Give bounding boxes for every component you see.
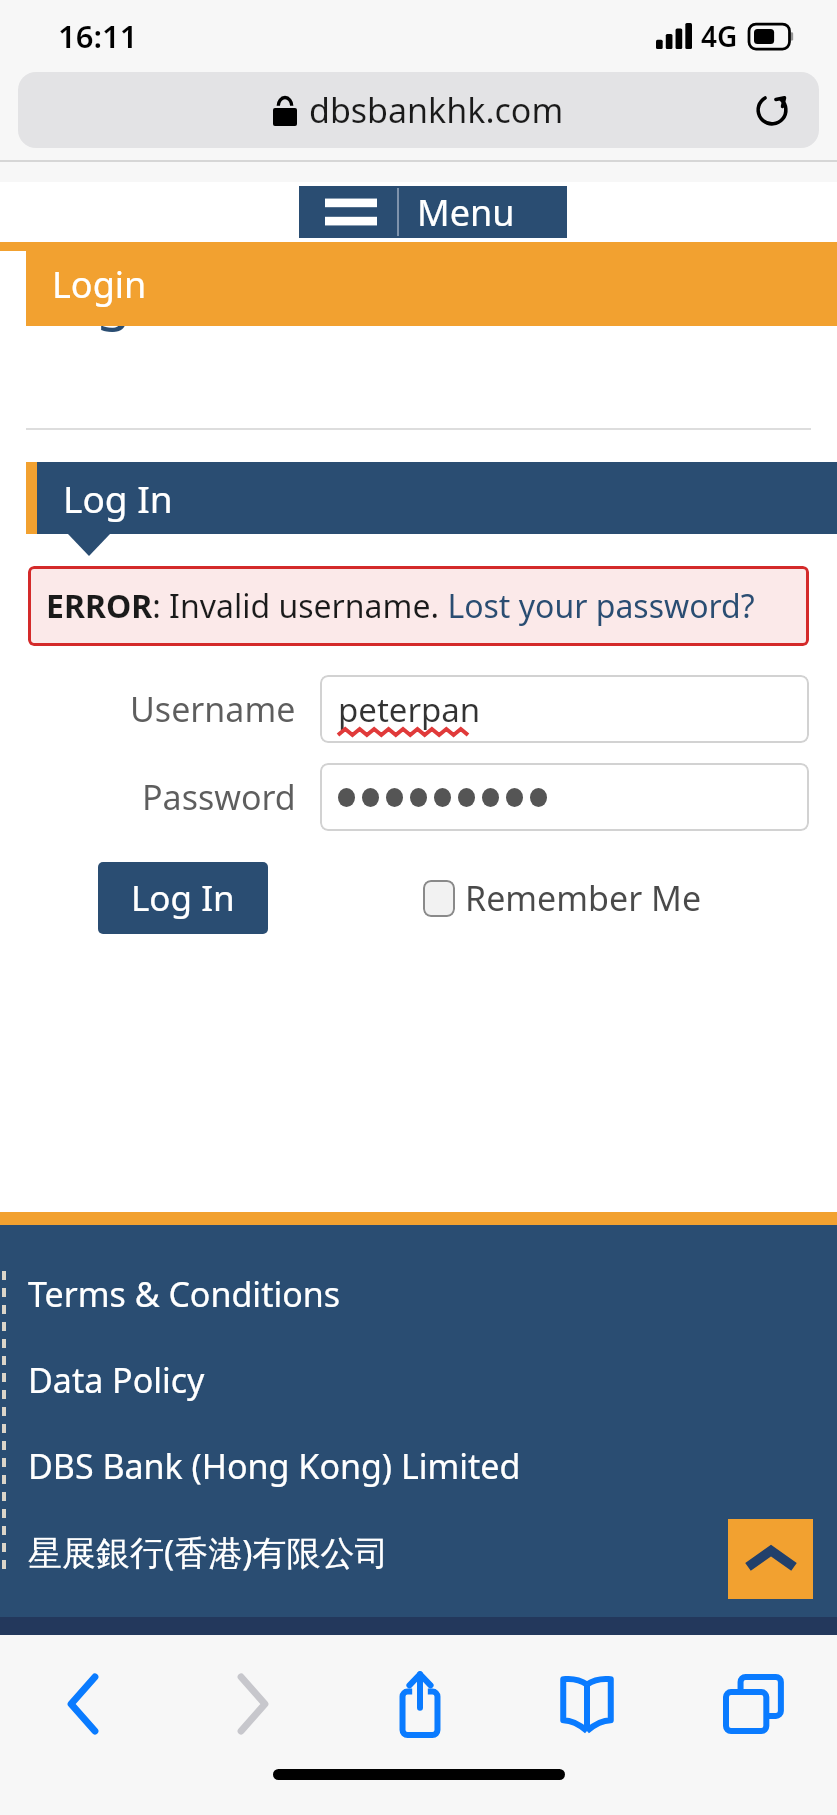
button[interactable]: Share	[336, 1657, 503, 1751]
staticText: Username	[130, 686, 296, 732]
staticText: Password	[142, 774, 296, 820]
button[interactable]	[320, 763, 809, 831]
button[interactable]: ERROR: Invalid username. Lost your passw…	[28, 566, 809, 646]
staticText: Log In	[63, 473, 173, 523]
staticText: Menu	[417, 188, 515, 237]
button[interactable]: Scroll to top	[728, 1519, 813, 1599]
button[interactable]: Terms & Conditions	[28, 1271, 341, 1317]
button[interactable]: Address bar dbsbankhk.com	[18, 72, 819, 148]
button[interactable]: Reload	[745, 83, 799, 137]
staticText: 星展銀行(香港)有限公司	[28, 1529, 389, 1575]
button[interactable]: DBS Bank (Hong Kong) Limited	[28, 1443, 521, 1489]
button[interactable]: Bookmarks	[503, 1657, 670, 1751]
button[interactable]: peterpan	[320, 675, 809, 743]
button[interactable]: Log In	[26, 462, 837, 534]
staticText: Remember Me	[465, 875, 702, 921]
staticText: dbsbankhk.com	[309, 87, 564, 133]
staticText: Terms & Conditions	[28, 1271, 341, 1317]
button[interactable]: Remember Me	[423, 862, 702, 934]
staticText: peterpan	[338, 687, 481, 732]
button[interactable]: Login	[26, 242, 837, 326]
button[interactable]: Forward	[168, 1657, 336, 1751]
staticText: DBS Bank (Hong Kong) Limited	[28, 1443, 521, 1489]
staticText: Login	[30, 256, 182, 335]
staticText: 16:11	[58, 15, 138, 57]
button[interactable]: Log In	[98, 862, 268, 934]
button[interactable]: 星展銀行(香港)有限公司	[28, 1529, 389, 1575]
button[interactable]: Data Policy	[28, 1357, 205, 1403]
staticText: Data Policy	[28, 1357, 205, 1403]
button[interactable]: Tabs	[670, 1657, 837, 1751]
button[interactable]: Menu	[299, 186, 567, 238]
staticText: Log In	[131, 874, 235, 922]
staticText: ERROR: Invalid username. Lost your passw…	[46, 584, 755, 628]
staticText: 4G	[701, 17, 738, 55]
staticText: Login	[52, 260, 147, 309]
button[interactable]: Back	[0, 1657, 168, 1751]
